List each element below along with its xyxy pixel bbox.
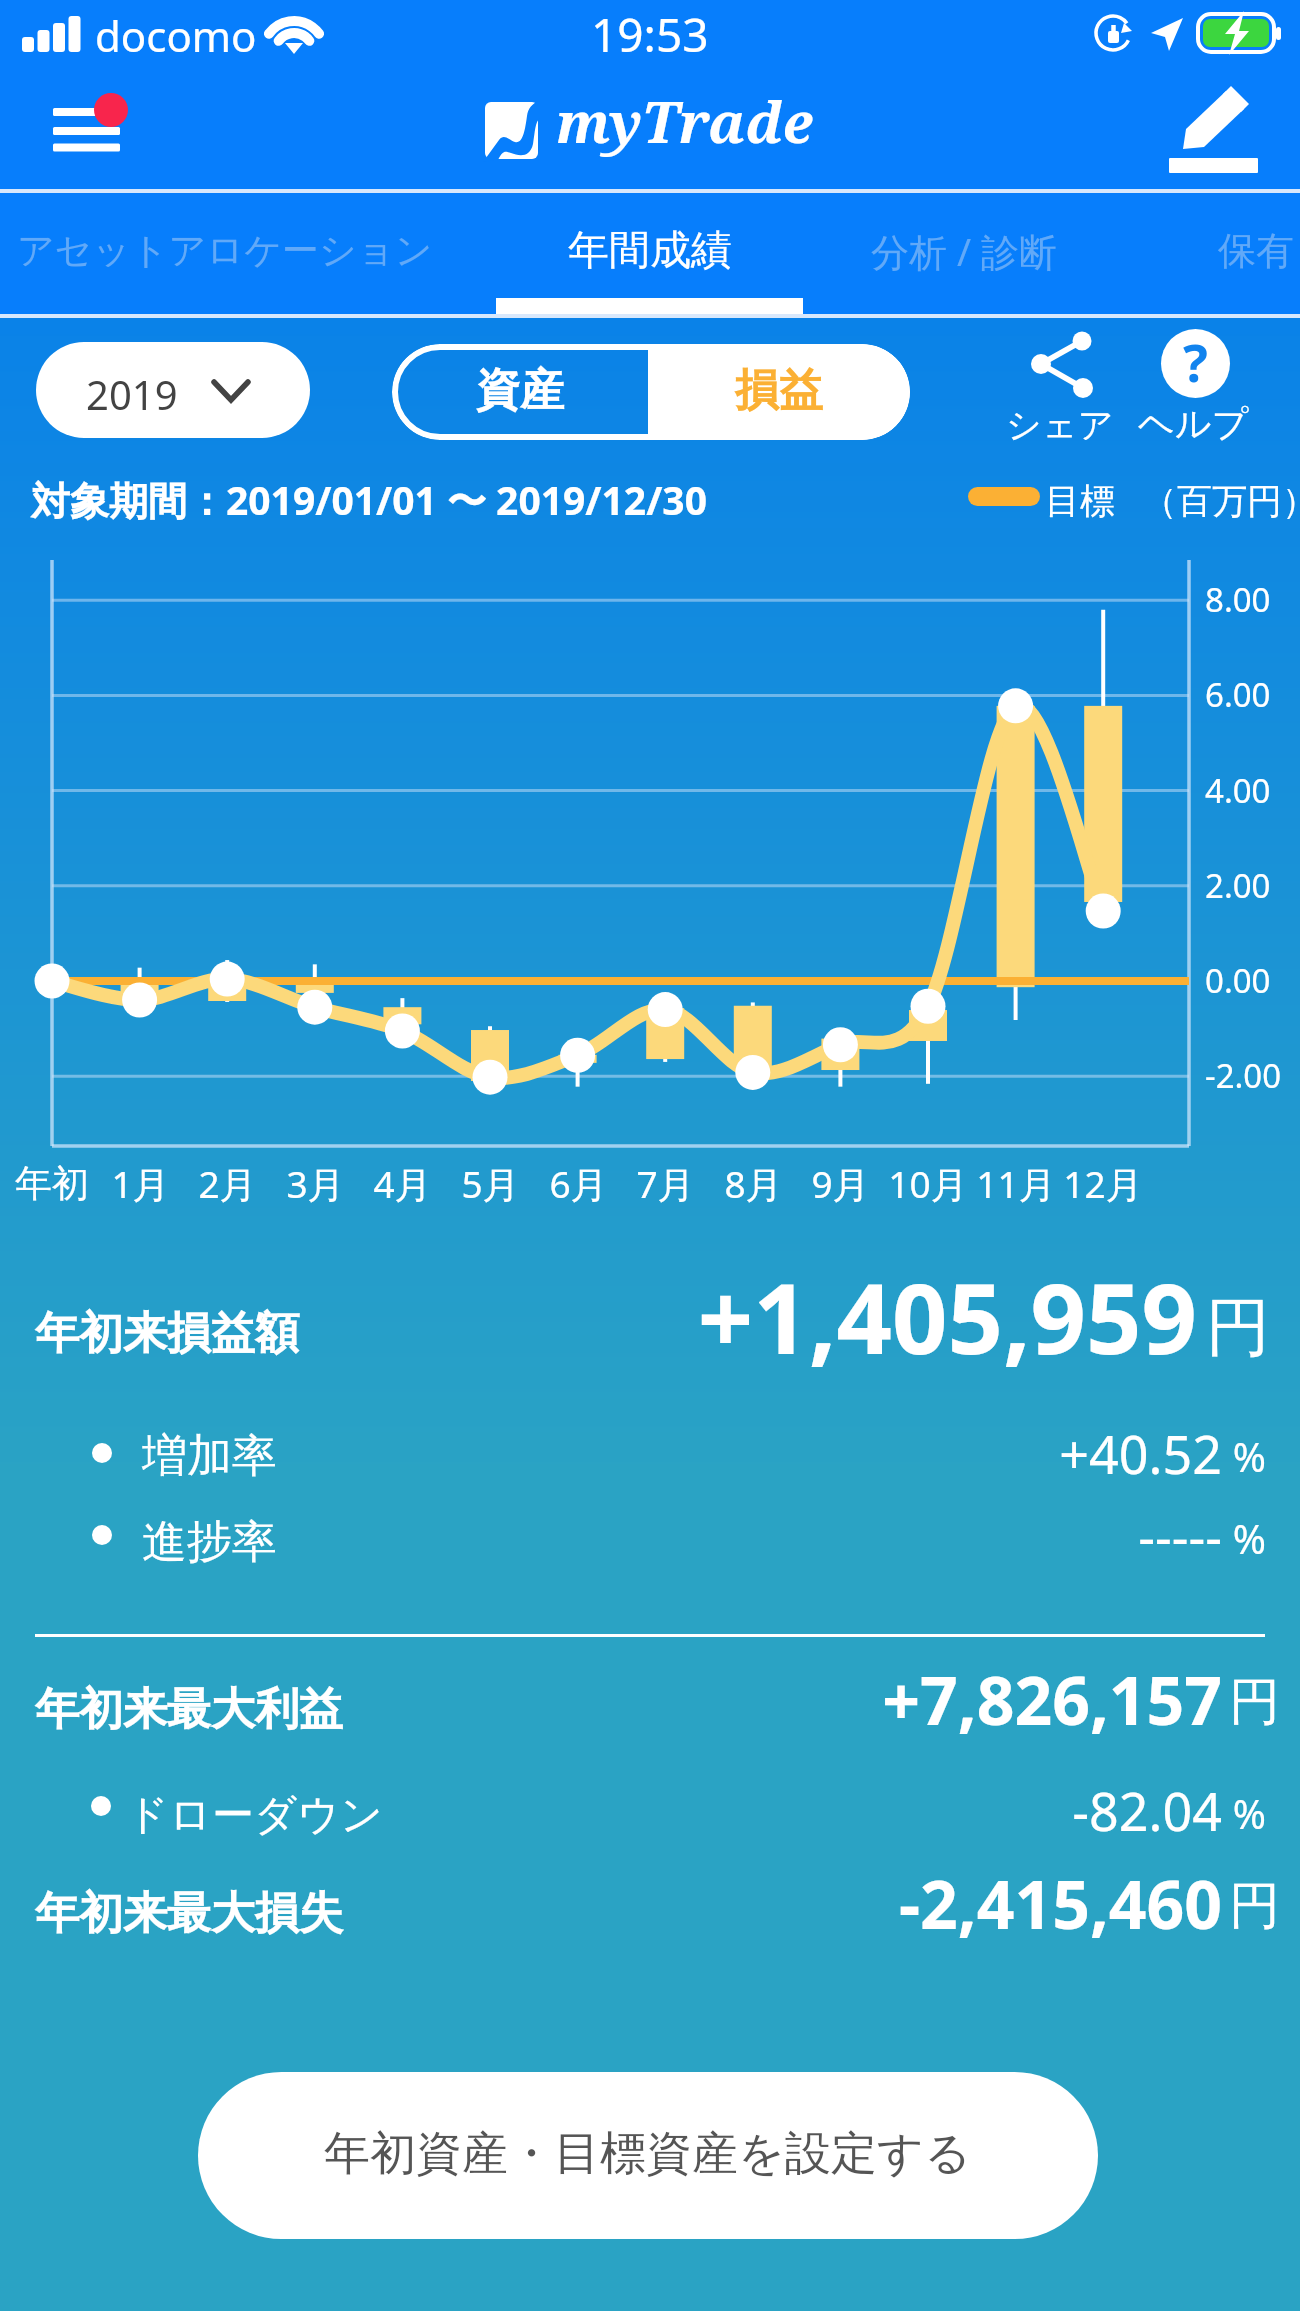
staticText: 年初来最大利益 (35, 1682, 343, 1737)
staticText: 6.00 (1205, 672, 1271, 717)
staticText: docomo (95, 7, 257, 64)
staticText: 対象期間：2019/01/01 〜 2019/12/30 (31, 473, 707, 526)
staticText: 年初 (15, 1160, 89, 1207)
staticText: 増加率 (142, 1428, 277, 1485)
button[interactable]: Share (996, 318, 1114, 450)
staticText: 7月 (636, 1158, 695, 1209)
staticText: 3月 (286, 1158, 345, 1209)
staticText: 年間成績 (568, 225, 732, 277)
button[interactable]: 損益 (648, 344, 910, 440)
staticText: 1月 (111, 1158, 170, 1209)
staticText: 4.00 (1205, 768, 1271, 813)
staticText: 9月 (811, 1158, 870, 1209)
staticText: アセットアロケーション (17, 227, 433, 274)
staticText: -2.00 (1205, 1053, 1282, 1098)
button[interactable]: 年初資産・目標資産を設定する (198, 2072, 1098, 2239)
button[interactable]: 資産 (392, 344, 648, 440)
staticText: ? (1183, 326, 1208, 395)
staticText: % (366, 1786, 1266, 1840)
staticText: 0.00 (1205, 958, 1271, 1003)
staticText: 保有 (1218, 227, 1294, 275)
staticText: +1,405,959 (297, 1250, 1197, 1382)
staticText: 11月 (976, 1158, 1056, 1209)
staticText: 2019 (86, 367, 178, 421)
staticText: 目標 (1045, 479, 1115, 523)
staticText: 8.00 (1205, 577, 1271, 622)
staticText: % (366, 1429, 1266, 1483)
staticText: シェア (1006, 403, 1114, 447)
staticText: 2月 (198, 1158, 257, 1209)
staticText: （百万円） (1142, 479, 1300, 523)
staticText: ヘルプ (1138, 401, 1249, 446)
staticText: -82.04 (322, 1775, 1222, 1846)
staticText: 8月 (724, 1158, 783, 1209)
staticText: ----- (322, 1500, 1222, 1571)
staticText: 4月 (373, 1158, 432, 1209)
button[interactable]: Help (1134, 318, 1264, 450)
staticText: 円 (380, 1670, 1280, 1734)
staticText: myTrade (556, 83, 813, 159)
staticText: 分析 / 診断 (871, 225, 1057, 277)
staticText: 5月 (461, 1158, 520, 1209)
staticText: +40.52 (322, 1418, 1222, 1489)
button[interactable]: Edit (1160, 85, 1270, 185)
staticText: 2.00 (1205, 863, 1271, 908)
staticText: 損益 (735, 363, 823, 418)
staticText: +7,826,157 (322, 1654, 1222, 1744)
button[interactable]: Menu (24, 97, 142, 177)
staticText: 6月 (549, 1158, 608, 1209)
staticText: 円 (370, 1287, 1270, 1368)
staticText: -2,415,460 (322, 1858, 1222, 1948)
button[interactable]: 2019 (36, 342, 310, 438)
staticText: 19:53 (591, 3, 709, 66)
staticText: 年初資産・目標資産を設定する (324, 2125, 972, 2183)
button[interactable]: アセットアロケーション (12, 193, 438, 314)
button[interactable]: 年間成績 (480, 193, 820, 314)
staticText: % (366, 1511, 1266, 1565)
staticText: 進捗率 (142, 1514, 277, 1571)
staticText: 円 (380, 1874, 1280, 1938)
button[interactable]: 分析 / 診断 (854, 193, 1074, 314)
staticText: ドローダウン (126, 1789, 383, 1842)
staticText: 資産 (476, 363, 564, 418)
staticText: 12月 (1063, 1158, 1143, 1209)
staticText: 10月 (888, 1158, 968, 1209)
button[interactable]: 保有 (1218, 193, 1300, 314)
staticText: 年初来最大損失 (35, 1886, 343, 1941)
staticText: 年初来損益額 (35, 1306, 299, 1361)
